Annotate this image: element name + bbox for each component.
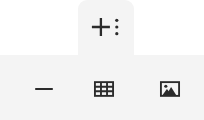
button[interactable]: Insert image xyxy=(155,74,185,104)
button[interactable]: Remove xyxy=(29,74,59,104)
button[interactable]: Add xyxy=(78,0,134,56)
button[interactable]: Insert table xyxy=(89,74,119,104)
